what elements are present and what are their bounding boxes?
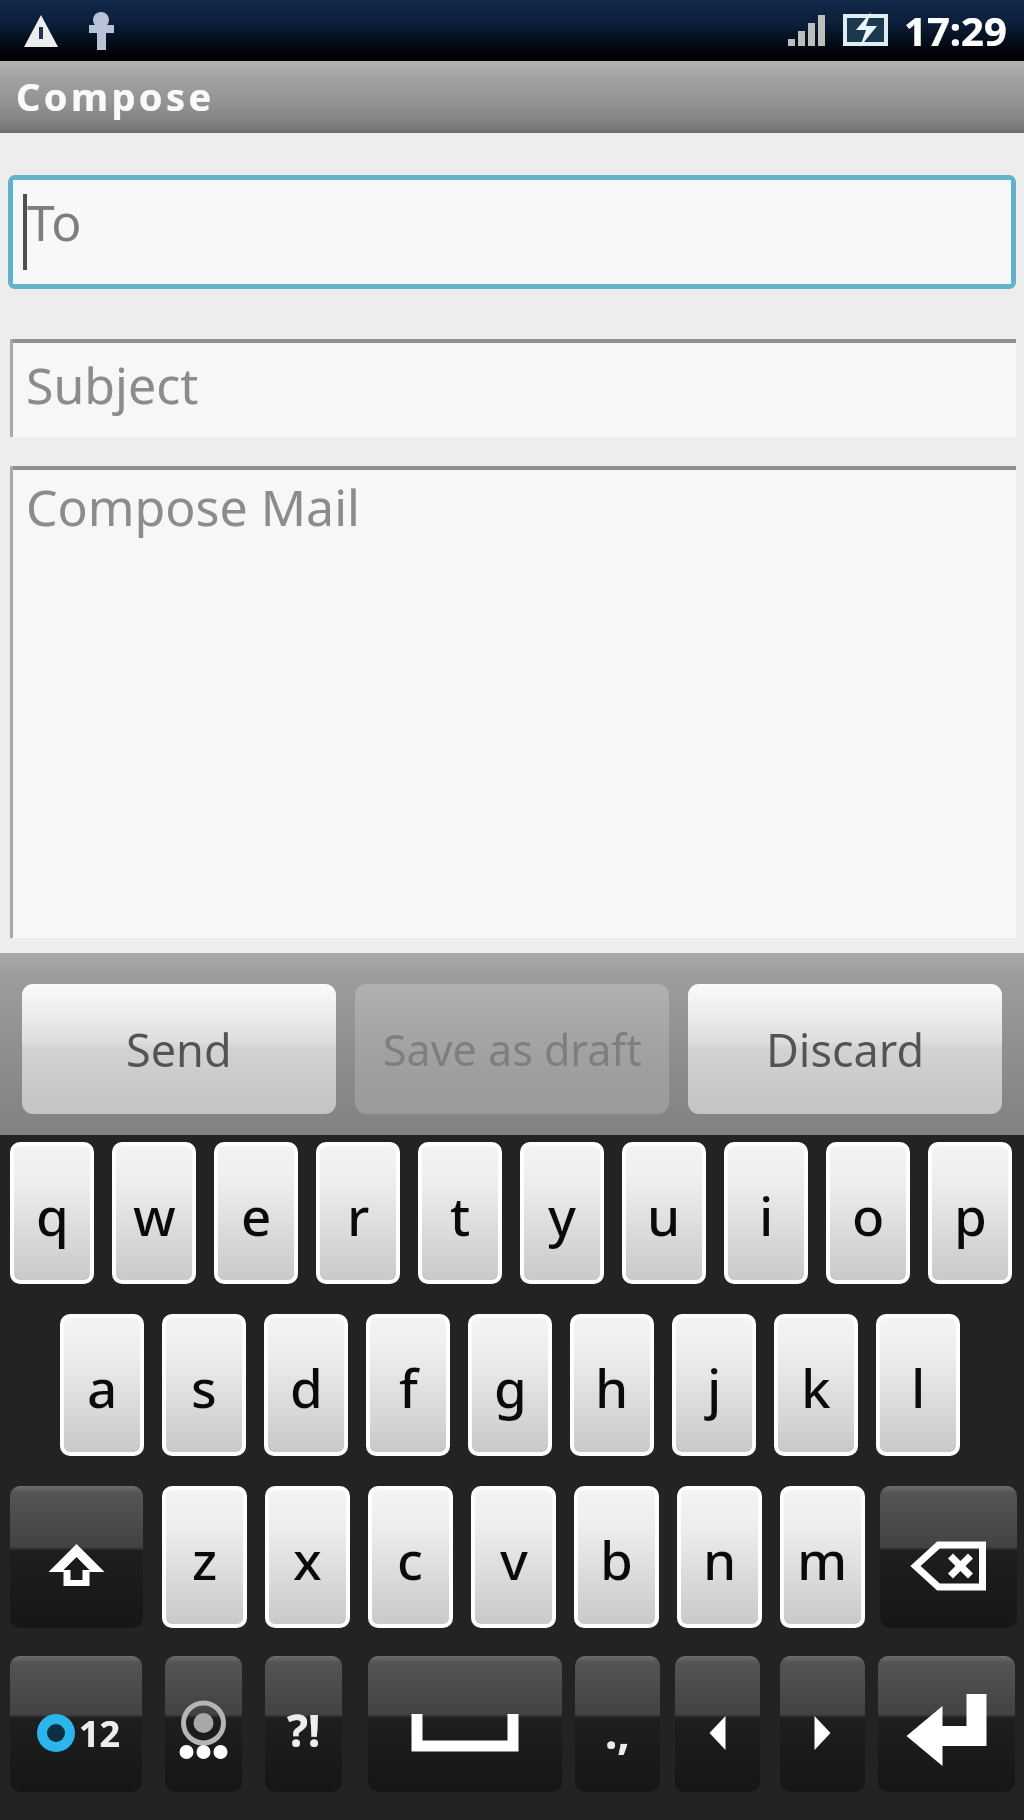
button[interactable]: v xyxy=(475,1490,552,1624)
staticText: d xyxy=(290,1351,323,1423)
button[interactable]: Shift xyxy=(10,1486,143,1628)
staticText: f xyxy=(399,1351,418,1423)
button[interactable]: Space xyxy=(368,1656,562,1792)
staticText: a xyxy=(87,1351,118,1423)
button[interactable]: q xyxy=(14,1146,90,1280)
button[interactable]: Voice input xyxy=(165,1656,242,1792)
button[interactable]: Save as draft xyxy=(355,984,669,1114)
staticText: v xyxy=(500,1523,528,1595)
button[interactable]: w xyxy=(116,1146,192,1280)
button[interactable]: To xyxy=(13,180,1011,284)
button[interactable]: Compose Mail xyxy=(10,466,1016,938)
staticText: n xyxy=(703,1523,737,1595)
staticText: u xyxy=(647,1179,681,1251)
staticText: x xyxy=(293,1523,322,1595)
button[interactable]: m xyxy=(784,1490,861,1624)
button[interactable]: p xyxy=(932,1146,1008,1280)
button[interactable]: g xyxy=(472,1318,548,1452)
button[interactable]: f xyxy=(370,1318,446,1452)
staticText: Compose Mail xyxy=(26,473,360,541)
button[interactable]: Move cursor right xyxy=(780,1656,865,1792)
staticText: o xyxy=(852,1179,885,1251)
staticText: g xyxy=(494,1351,527,1423)
staticText: b xyxy=(600,1523,633,1595)
staticText: c xyxy=(397,1523,424,1595)
staticText: m xyxy=(797,1523,848,1595)
button[interactable]: Backspace xyxy=(880,1486,1017,1628)
staticText: q xyxy=(36,1179,69,1251)
staticText: y xyxy=(548,1179,576,1251)
button[interactable]: k xyxy=(778,1318,854,1452)
staticText: Discard xyxy=(766,1019,925,1080)
button[interactable]: o xyxy=(830,1146,906,1280)
button[interactable]: a xyxy=(64,1318,140,1452)
staticText: h xyxy=(595,1351,629,1423)
button[interactable]: y xyxy=(524,1146,600,1280)
button[interactable]: Discard xyxy=(688,984,1002,1114)
staticText: l xyxy=(911,1351,926,1423)
button[interactable]: s xyxy=(166,1318,242,1452)
staticText: 12 xyxy=(79,1709,121,1758)
staticText: ?! xyxy=(287,1700,321,1760)
button[interactable]: Send xyxy=(22,984,336,1114)
staticText: ., xyxy=(605,1702,630,1762)
button[interactable]: l xyxy=(880,1318,956,1452)
staticText: w xyxy=(133,1179,176,1251)
button[interactable]: z xyxy=(166,1490,243,1624)
staticText: z xyxy=(192,1523,218,1595)
button[interactable]: Move cursor left xyxy=(675,1656,760,1792)
staticText: Subject xyxy=(26,351,199,419)
button[interactable]: j xyxy=(676,1318,752,1452)
button[interactable]: c xyxy=(372,1490,449,1624)
button[interactable]: t xyxy=(422,1146,498,1280)
staticText: i xyxy=(759,1179,774,1251)
button[interactable]: b xyxy=(578,1490,655,1624)
staticText: Compose xyxy=(16,70,215,122)
staticText: s xyxy=(191,1351,217,1423)
staticText: t xyxy=(450,1179,471,1251)
button[interactable]: u xyxy=(626,1146,702,1280)
button[interactable]: x xyxy=(269,1490,346,1624)
button[interactable]: Enter xyxy=(878,1656,1015,1792)
button[interactable]: r xyxy=(320,1146,396,1280)
button[interactable]: e xyxy=(218,1146,294,1280)
button[interactable]: Subject xyxy=(10,339,1016,437)
staticText: r xyxy=(347,1179,370,1251)
staticText: Send xyxy=(126,1019,232,1080)
button[interactable]: i xyxy=(728,1146,804,1280)
button[interactable]: Comma and period xyxy=(575,1656,660,1792)
button[interactable]: Numbers and symbols xyxy=(10,1656,142,1792)
staticText: j xyxy=(707,1351,722,1423)
staticText: To xyxy=(27,188,82,256)
staticText: p xyxy=(954,1179,987,1251)
staticText: k xyxy=(801,1351,831,1423)
staticText: 17:29 xyxy=(904,3,1007,57)
button[interactable]: n xyxy=(681,1490,758,1624)
staticText: e xyxy=(241,1179,272,1251)
button[interactable]: d xyxy=(268,1318,344,1452)
button[interactable]: h xyxy=(574,1318,650,1452)
button[interactable]: Symbols xyxy=(265,1656,342,1792)
staticText: Save as draft xyxy=(383,1020,642,1079)
